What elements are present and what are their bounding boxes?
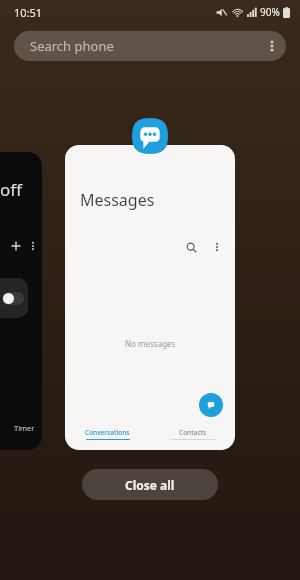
staticText: 10:51: [14, 5, 43, 20]
button[interactable]: Search phone: [14, 31, 286, 61]
button[interactable]: off: [0, 152, 42, 450]
button[interactable]: More options: [258, 32, 286, 60]
button[interactable]: Toggle: [2, 292, 24, 305]
button[interactable]: Contacts: [150, 428, 235, 440]
staticText: Timer: [14, 423, 35, 433]
staticText: Messages: [80, 189, 155, 211]
staticText: Search phone: [30, 37, 114, 55]
button[interactable]: Messages: [65, 145, 235, 450]
staticText: No messages: [125, 338, 176, 349]
button[interactable]: Search: [181, 237, 201, 257]
button[interactable]: More options: [207, 237, 227, 257]
staticText: Close all: [125, 477, 175, 493]
button[interactable]: Conversations: [65, 428, 150, 440]
staticText: 90%: [260, 5, 280, 19]
staticText: Contacts: [179, 428, 207, 437]
staticText: off: [0, 178, 22, 201]
staticText: Conversations: [85, 428, 130, 437]
button[interactable]: New conversation: [199, 393, 223, 417]
button[interactable]: Close all: [82, 469, 218, 500]
